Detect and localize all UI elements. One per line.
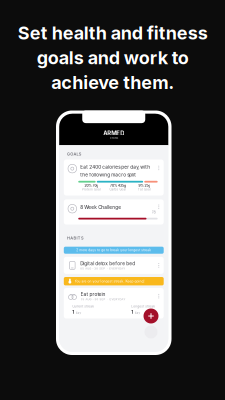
button[interactable]: Eat 2400 calories per day, with the foll… — [64, 159, 164, 195]
staticText: ARMED — [103, 130, 124, 137]
staticText: 05 AUG - 30 SEP · EVERYDAY — [80, 267, 125, 270]
staticText: 78 — [151, 210, 155, 214]
staticText: 1 — [131, 309, 133, 315]
staticText: 1 — [72, 309, 74, 315]
staticText: Longest streak — [131, 304, 155, 308]
staticText: HABITS — [67, 235, 84, 240]
button[interactable]: Add — [143, 308, 158, 323]
staticText: 20% 70g — [84, 184, 98, 188]
button[interactable]: 2 more days to go to break your longest … — [64, 247, 164, 254]
staticText: Protein Goal — [82, 188, 101, 191]
staticText: Set health and fitness goals and work to… — [17, 22, 207, 93]
staticText: 70% 435g — [110, 184, 126, 188]
staticText: day — [76, 311, 82, 314]
staticText: 05 AUG - 30 SEP · EVERYDAY — [81, 298, 126, 301]
button[interactable]: Digital detox before bed — [64, 257, 164, 274]
staticText: Digital detox before bed — [80, 261, 135, 266]
staticText: 2 more days to go to break your longest … — [76, 248, 151, 252]
staticText: GOALS — [67, 151, 82, 156]
staticText: Eat protein — [81, 291, 106, 297]
button[interactable]: 8 Week Challenge — [64, 199, 164, 224]
staticText: 8 Week Challenge — [80, 204, 121, 210]
staticText: Carbs Goal — [109, 188, 126, 191]
staticText: Current streak — [72, 304, 94, 308]
staticText: FITNESS — [110, 137, 118, 139]
staticText: day — [135, 311, 141, 314]
staticText: You are on your longest streak. Keep goi… — [75, 279, 145, 283]
staticText: Fat Goal — [138, 188, 151, 191]
button[interactable]: Eat protein — [64, 288, 164, 318]
staticText: Eat 2400 calories per day, with the foll… — [80, 164, 150, 178]
button[interactable]: You are on your longest streak. Keep goi… — [64, 277, 164, 285]
staticText: 9% 25g — [138, 184, 150, 188]
